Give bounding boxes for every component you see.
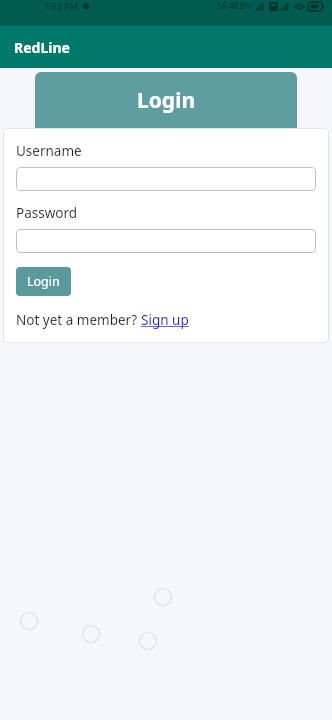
staticText: 7:53 PM <box>44 0 78 12</box>
staticText: RedLine <box>14 38 70 57</box>
button[interactable]: Sign up <box>141 311 189 329</box>
button[interactable]: Text input field <box>16 167 316 191</box>
button[interactable]: Text input field <box>16 229 316 253</box>
staticText: Username <box>16 142 82 160</box>
staticText: 56.4KB/s <box>217 0 253 12</box>
staticText: Password <box>16 204 78 222</box>
staticText: Sign up <box>141 311 189 329</box>
staticText: Not yet a member? <box>16 311 141 329</box>
button[interactable]: Login <box>16 267 71 296</box>
staticText: Login <box>27 273 60 290</box>
staticText: Login <box>137 86 196 115</box>
